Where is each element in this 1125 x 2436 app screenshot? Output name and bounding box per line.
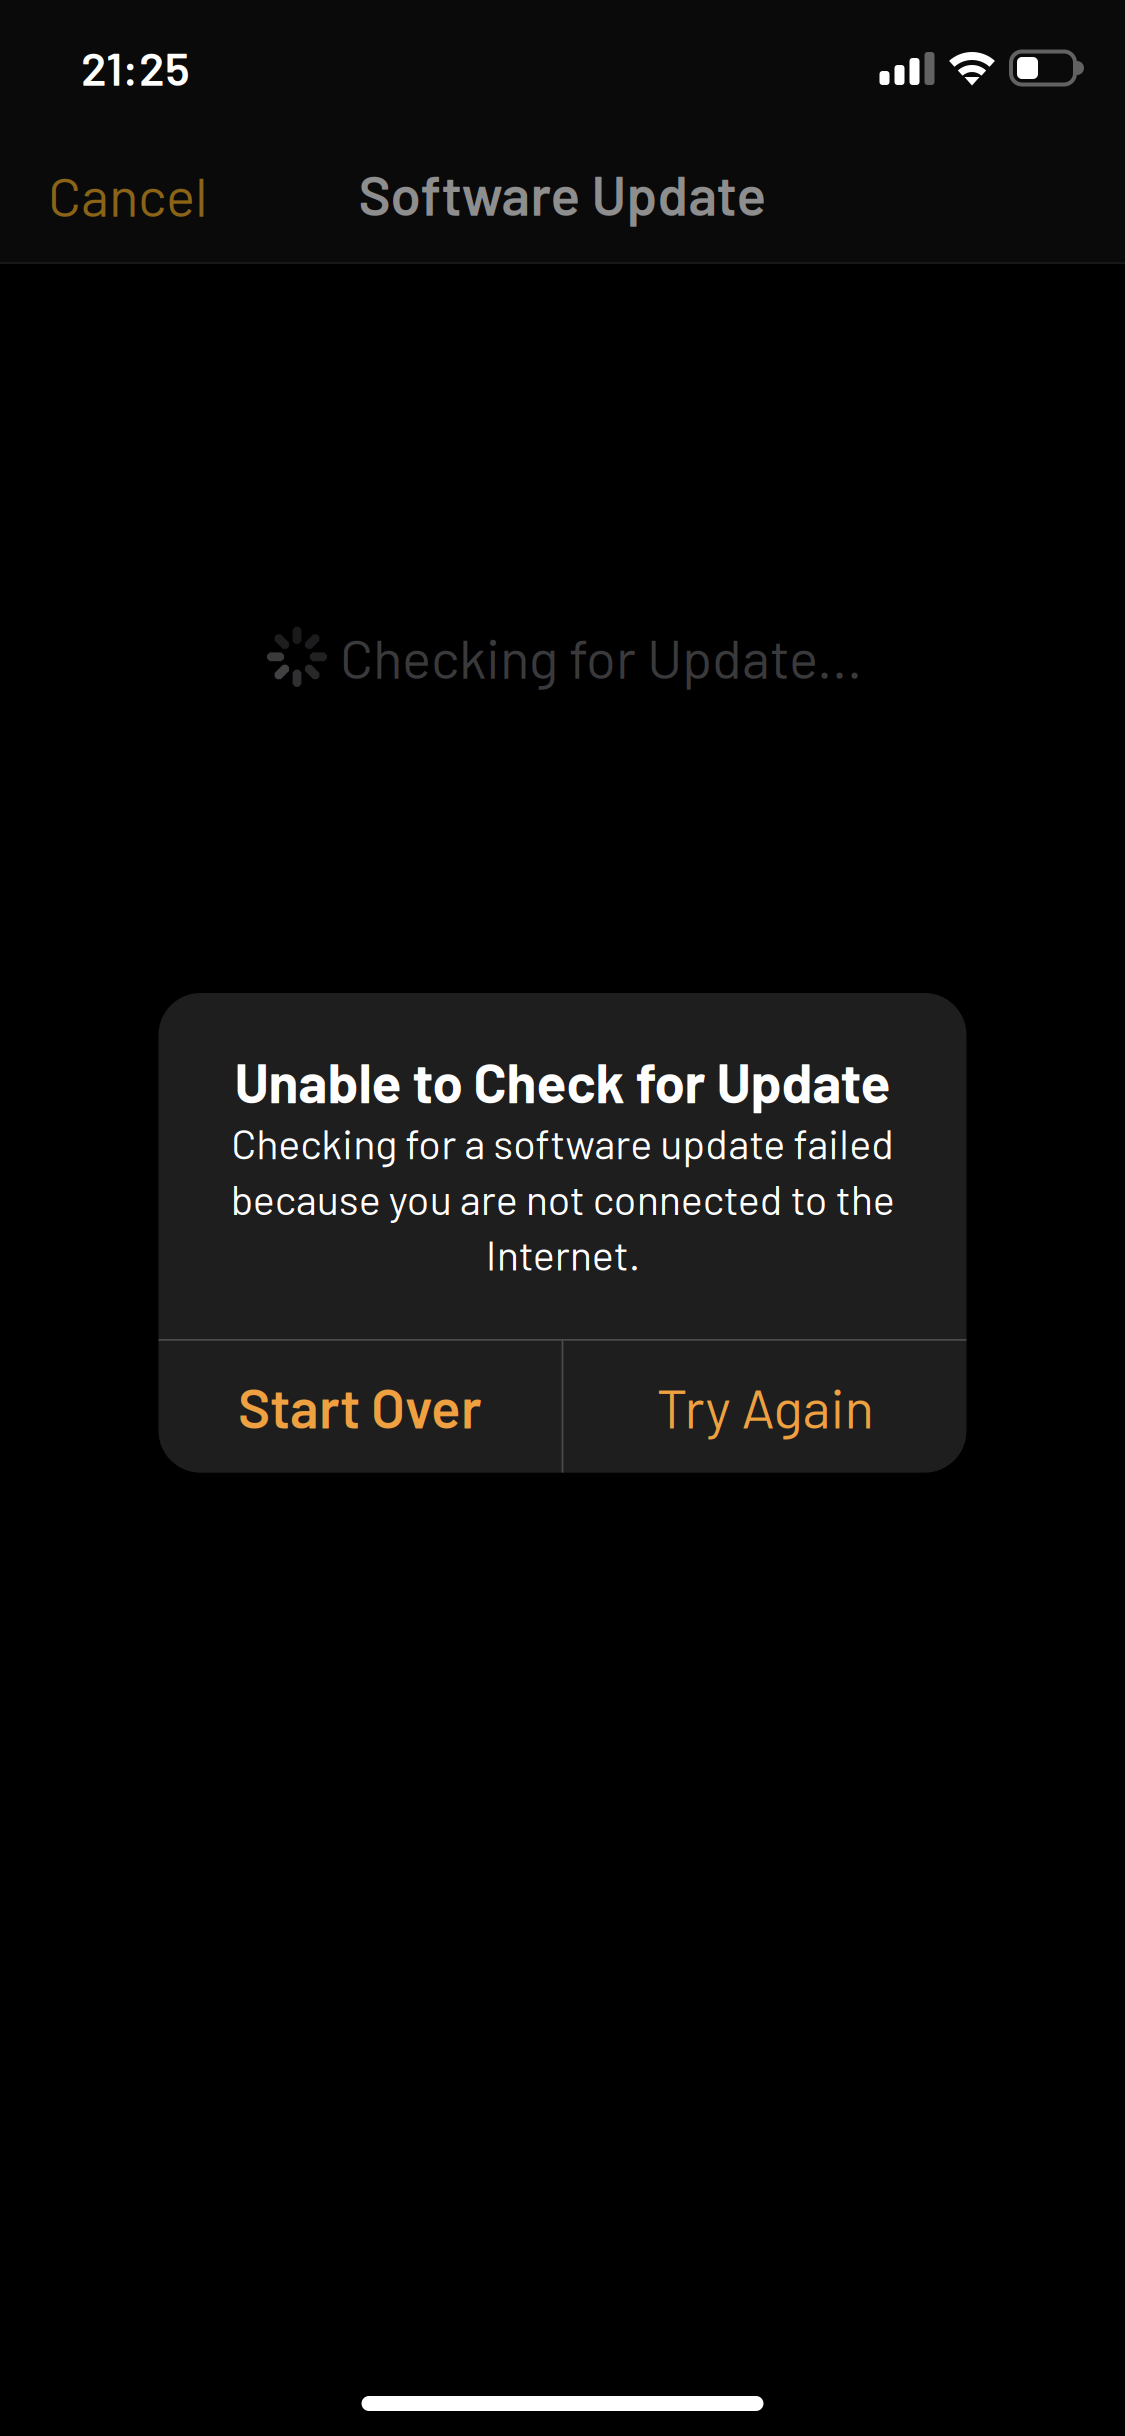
staticText: Cancel: [48, 162, 208, 228]
staticText: Checking for Update...: [340, 624, 862, 690]
button[interactable]: Try Again: [563, 1341, 966, 1473]
staticText: 21:25: [81, 39, 190, 95]
staticText: Unable to Check for Update: [234, 1049, 890, 1114]
button[interactable]: Start Over: [158, 1341, 562, 1473]
staticText: Try Again: [656, 1374, 873, 1439]
staticText: Start Over: [238, 1374, 482, 1439]
staticText: Software Update: [358, 161, 766, 227]
button[interactable]: Cancel: [0, 138, 244, 258]
staticText: Checking for a software update failed be…: [230, 1118, 894, 1279]
